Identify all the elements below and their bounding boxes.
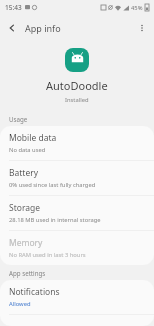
staticText: No data used <box>9 146 46 154</box>
staticText: App settings <box>9 269 46 277</box>
button[interactable]: Notifications <box>0 280 154 314</box>
staticText: Usage <box>9 115 28 123</box>
button[interactable]: Battery <box>0 161 154 195</box>
button[interactable]: Mobile data <box>0 126 154 160</box>
staticText: 0% used since last fully charged <box>9 181 96 189</box>
staticText: 15:43 <box>5 3 22 12</box>
staticText: App info <box>25 22 61 34</box>
staticText: Battery <box>9 167 39 179</box>
staticText: 45% <box>131 4 143 12</box>
staticText: No RAM used in last 3 hours <box>9 251 86 259</box>
button[interactable]: Storage <box>0 196 154 230</box>
staticText: Allowed <box>9 300 31 308</box>
staticText: Mobile data <box>9 132 57 144</box>
staticText: 28.18 MB used in internal storage <box>9 216 101 224</box>
button[interactable] <box>65 48 89 72</box>
staticText: Notifications <box>9 286 60 298</box>
staticText: Installed <box>65 96 89 104</box>
staticText: Storage <box>9 202 41 214</box>
staticText: AutoDoodle <box>46 78 108 93</box>
button[interactable]: More options <box>130 16 154 40</box>
staticText: Memory <box>9 237 43 249</box>
button[interactable]: Memory <box>0 231 154 265</box>
button[interactable]: Back <box>0 16 24 40</box>
